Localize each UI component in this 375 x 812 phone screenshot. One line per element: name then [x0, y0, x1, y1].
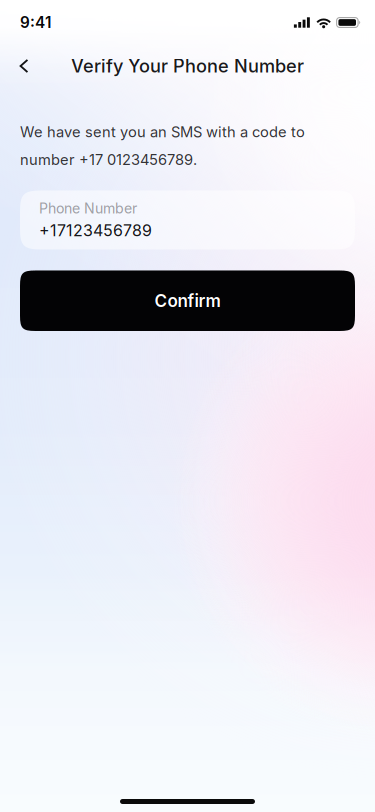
- staticText: Phone Number: [39, 200, 137, 217]
- staticText: Confirm: [154, 290, 220, 311]
- button[interactable]: Back: [4, 45, 44, 87]
- button[interactable]: Confirm: [20, 270, 355, 331]
- staticText: +17123456789: [39, 221, 152, 240]
- button[interactable]: Phone Number: [20, 190, 355, 249]
- staticText: 9:41: [20, 13, 51, 32]
- staticText: We have sent you an SMS with a code to n…: [20, 123, 305, 168]
- staticText: Verify Your Phone Number: [71, 55, 304, 77]
